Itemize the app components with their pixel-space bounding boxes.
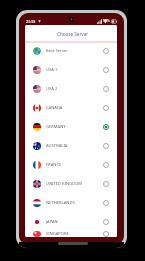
- staticText: FRANCE: [46, 162, 62, 168]
- staticText: NETHERLANDS: [46, 200, 75, 206]
- button[interactable]: FRANCE: [25, 155, 117, 174]
- staticText: USA 1: [46, 67, 58, 73]
- button[interactable]: NETHERLANDS: [25, 193, 117, 212]
- button[interactable]: USA 1: [25, 60, 117, 79]
- staticText: CANADA: [46, 105, 63, 111]
- staticText: USA 2: [46, 86, 58, 92]
- staticText: SINGAPORE: [46, 231, 69, 237]
- button[interactable]: JAPAN: [25, 212, 117, 231]
- staticText: Best Server: [46, 48, 68, 54]
- staticText: 50%: [103, 18, 110, 23]
- staticText: GERMANY: [46, 124, 66, 130]
- button[interactable]: CANADA: [25, 98, 117, 117]
- button[interactable]: UNITED KINGDOM: [25, 174, 117, 193]
- button[interactable]: SINGAPORE: [25, 231, 117, 237]
- staticText: Choose Server: [57, 31, 89, 37]
- staticText: JAPAN: [46, 219, 58, 225]
- button[interactable]: USA 2: [25, 79, 117, 98]
- button[interactable]: Best Server: [25, 41, 117, 60]
- staticText: UNITED KINGDOM: [46, 181, 83, 187]
- staticText: AUSTRALIA: [46, 143, 68, 149]
- button[interactable]: GERMANY: [25, 117, 117, 136]
- staticText: 23:38: [26, 19, 36, 24]
- button[interactable]: AUSTRALIA: [25, 136, 117, 155]
